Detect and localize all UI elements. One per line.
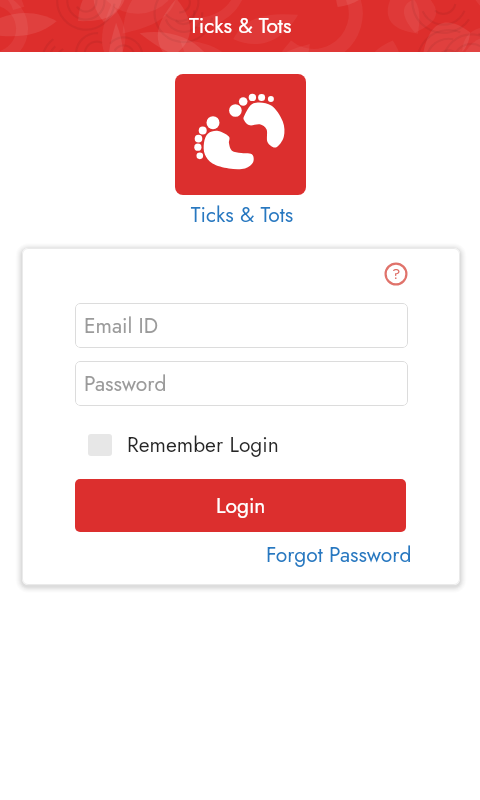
button[interactable]: Email ID [75,303,408,348]
staticText: Ticks & Tots [2,200,480,230]
button[interactable]: Login [75,479,406,532]
button[interactable]: Remember Login [88,430,279,460]
staticText: Login [216,491,266,521]
staticText: Password [84,369,167,399]
staticText: Email ID [84,311,159,341]
button[interactable]: Help [382,260,410,288]
staticText: Forgot Password [266,540,412,570]
staticText: Ticks & Tots [189,11,292,41]
staticText: Remember Login [127,430,279,460]
staticText: ? [392,263,401,285]
button[interactable]: Password [75,361,408,406]
button[interactable]: Forgot Password [266,540,412,570]
